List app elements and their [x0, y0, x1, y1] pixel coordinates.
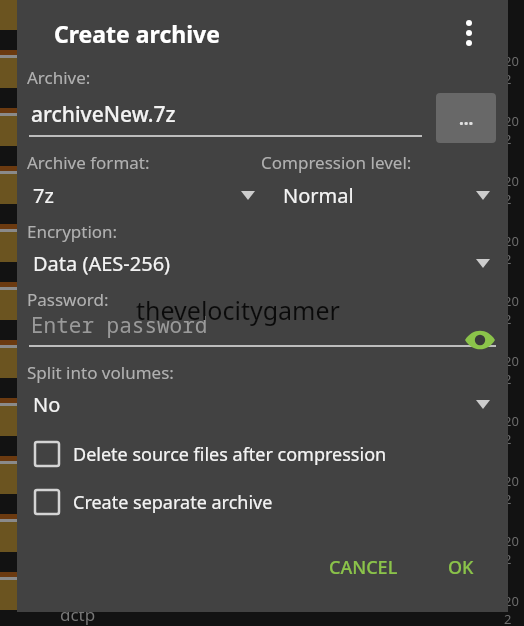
staticText: No [33, 391, 61, 418]
button[interactable]: Show password [460, 320, 500, 360]
button[interactable]: More options [452, 16, 486, 50]
staticText: 202 [504, 292, 524, 328]
staticText: 202 [504, 412, 524, 448]
staticText: 202 [504, 532, 524, 568]
button[interactable]: OK [438, 549, 484, 586]
button[interactable]: 7z [27, 178, 261, 212]
staticText: 202 [504, 172, 524, 208]
button[interactable]: Delete source files after compression [35, 435, 508, 473]
staticText: 202 [504, 52, 524, 88]
staticText: CANCEL [329, 555, 398, 580]
staticText: ... [459, 107, 474, 130]
staticText: 202 [504, 232, 524, 268]
staticText: Create separate archive [73, 490, 273, 515]
staticText: 202 [504, 472, 524, 508]
staticText: Archive: [27, 66, 91, 89]
button[interactable]: Normal [261, 178, 496, 212]
button[interactable]: Enter password [29, 311, 496, 347]
staticText: 202 [504, 352, 524, 388]
staticText: dctp [60, 603, 96, 626]
button[interactable]: Data (AES-256) [27, 246, 496, 280]
staticText: 7z [33, 182, 54, 209]
staticText: Normal [283, 182, 354, 209]
staticText: Split into volumes: [27, 361, 174, 384]
staticText: Archive format: [27, 151, 261, 174]
staticText: 202 [504, 592, 524, 626]
button[interactable]: No [27, 387, 496, 421]
staticText: Encryption: [27, 220, 118, 243]
staticText: thevelocitygamer [136, 293, 340, 327]
button[interactable]: Browse [436, 93, 496, 143]
staticText: archiveNew.7z [31, 100, 176, 129]
staticText: Data (AES-256) [33, 250, 171, 277]
button[interactable]: Create separate archive [35, 483, 508, 521]
staticText: Delete source files after compression [73, 442, 387, 467]
staticText: Create archive [54, 18, 220, 49]
button[interactable]: CANCEL [319, 549, 408, 586]
staticText: Compression level: [261, 151, 496, 174]
staticText: Enter password [31, 311, 208, 340]
button[interactable]: archiveNew.7z [29, 100, 422, 137]
staticText: 202 [504, 112, 524, 148]
staticText: OK [448, 555, 474, 580]
staticText: Password: [27, 288, 109, 311]
